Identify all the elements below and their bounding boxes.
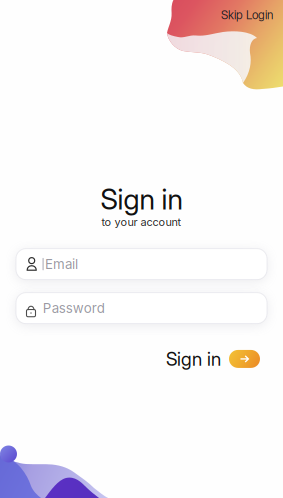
button[interactable]: Skip Login [212, 3, 282, 27]
staticText: Email [45, 256, 78, 272]
staticText: Skip Login [221, 8, 273, 22]
staticText: Password [43, 300, 105, 316]
staticText: Sign in [100, 182, 182, 216]
staticText: Sign in [166, 348, 221, 370]
staticText: to your account [101, 215, 181, 229]
button[interactable]: Sign in [166, 348, 260, 370]
